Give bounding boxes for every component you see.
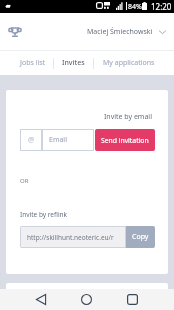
staticText: Invites — [62, 58, 85, 68]
button[interactable]: Achievements — [4, 21, 26, 43]
button[interactable]: Back — [27, 290, 54, 309]
button[interactable] — [6, 283, 168, 303]
button[interactable]: Jobs list — [19, 53, 47, 73]
button[interactable]: My applications — [102, 53, 156, 73]
staticText: 84% — [128, 2, 142, 12]
staticText: http://skillhunt.neoteric.eu/r — [27, 233, 114, 242]
staticText: Jobs list — [20, 58, 46, 68]
button[interactable]: Invites — [61, 53, 86, 73]
staticText: 12:20 — [151, 1, 172, 12]
staticText: @ — [28, 135, 35, 145]
staticText: Invite by reflink — [20, 210, 68, 219]
staticText: Copy — [132, 232, 149, 242]
staticText: Send invitation — [101, 136, 149, 145]
button[interactable]: Maciej Śmiechowski — [83, 21, 174, 43]
staticText: My applications — [103, 58, 155, 68]
staticText: Maciej Śmiechowski — [87, 27, 153, 37]
staticText: Invite by email — [104, 112, 152, 122]
staticText: OR — [20, 177, 29, 185]
button[interactable]: Recent apps — [119, 290, 146, 309]
staticText: Email — [49, 135, 67, 145]
button[interactable]: Copy — [126, 226, 155, 248]
button[interactable]: Send invitation — [95, 129, 155, 151]
button[interactable]: Home — [73, 290, 100, 309]
